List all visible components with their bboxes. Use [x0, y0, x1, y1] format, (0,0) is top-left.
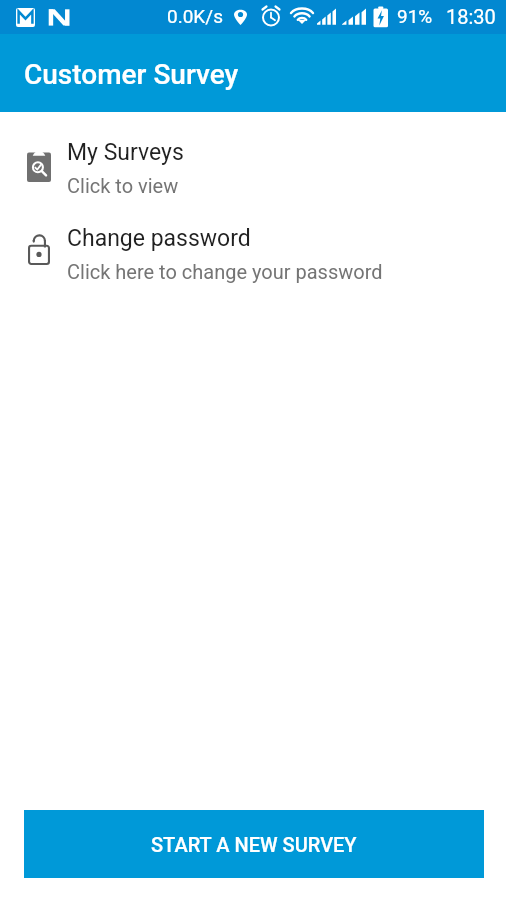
staticText: 18:30: [446, 5, 496, 28]
staticText: Customer Survey: [24, 58, 239, 91]
button[interactable]: START A NEW SURVEY: [24, 810, 484, 878]
staticText: 0.0K/s: [167, 5, 223, 27]
staticText: Change password: [67, 225, 251, 252]
button[interactable]: Change password: [0, 225, 506, 283]
button[interactable]: My Surveys: [0, 139, 506, 197]
staticText: Click here to change your password: [67, 260, 383, 283]
staticText: Click to view: [67, 174, 179, 197]
staticText: 91%: [397, 5, 433, 27]
staticText: My Surveys: [67, 139, 184, 166]
staticText: START A NEW SURVEY: [151, 833, 357, 856]
